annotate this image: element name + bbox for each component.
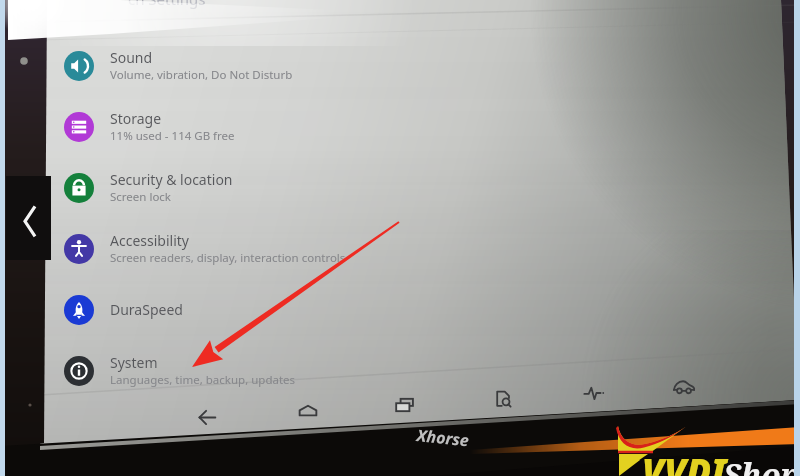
staticText: Shop <box>723 453 800 476</box>
staticText: System <box>110 353 158 372</box>
staticText: Languages, time, backup, updates <box>110 372 296 388</box>
button[interactable]: Home <box>286 392 330 430</box>
staticText: Storage <box>110 109 162 128</box>
staticText: 11% used - 114 GB free <box>110 128 235 144</box>
staticText: ch Settings <box>128 0 206 9</box>
staticText: VVDI <box>642 446 727 476</box>
staticText: Accessibility <box>110 231 189 250</box>
staticText: Volume, vibration, Do Not Disturb <box>110 67 293 83</box>
staticText: Screen readers, display, interaction con… <box>110 250 346 266</box>
button[interactable]: Document search <box>481 379 525 417</box>
staticText: Security & location <box>110 170 233 189</box>
staticText: Sound <box>110 48 153 67</box>
button[interactable]: Security & location <box>0 157 800 218</box>
button[interactable]: Back <box>185 398 229 436</box>
button[interactable]: DuraSpeed <box>0 279 800 340</box>
staticText: Screen lock <box>110 189 172 205</box>
button[interactable]: Sound <box>0 35 800 96</box>
button[interactable]: Storage <box>0 96 800 157</box>
button[interactable]: System <box>0 340 800 401</box>
staticText: Xhorse <box>416 424 471 451</box>
staticText: DuraSpeed <box>110 300 183 319</box>
button[interactable]: Back <box>6 176 51 260</box>
button[interactable]: Recent apps <box>383 386 427 424</box>
button[interactable]: Diagnostics <box>572 374 616 412</box>
button[interactable]: Accessibility <box>0 218 800 279</box>
button[interactable]: Vehicle <box>662 368 706 406</box>
